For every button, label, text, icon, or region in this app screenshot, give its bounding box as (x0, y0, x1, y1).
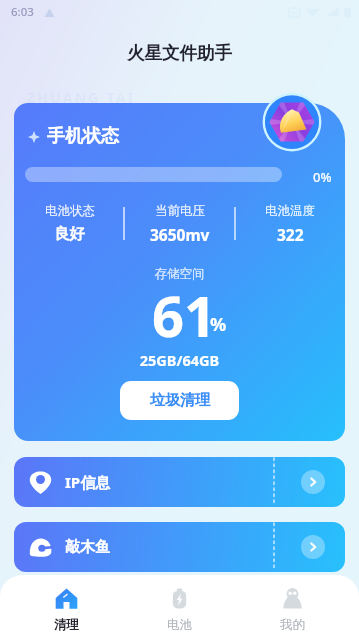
button[interactable]: 清理 (10, 575, 123, 638)
button[interactable]: Open 敲木鱼 (301, 535, 325, 559)
staticText: 当前电压 (155, 203, 205, 219)
staticText: 电池状态 (45, 203, 95, 219)
staticText: 手机状态 (47, 125, 119, 148)
button[interactable]: 我的 (236, 575, 349, 638)
staticText: 322 (277, 224, 304, 245)
staticText: 电池 (167, 617, 192, 633)
staticText: 电池温度 (265, 203, 315, 219)
staticText: 我的 (280, 617, 305, 633)
staticText: 敲木鱼 (65, 538, 110, 557)
button[interactable]: Open IP信息 (301, 470, 325, 494)
staticText: IP信息 (65, 472, 111, 492)
staticText: 清理 (54, 617, 79, 633)
staticText: ZHUANG TAI (27, 88, 136, 107)
staticText: 存储空间 (14, 266, 345, 282)
button[interactable]: Profile (263, 93, 321, 151)
staticText: 25GB/64GB (14, 350, 345, 370)
staticText: 垃圾清理 (150, 391, 210, 410)
button[interactable]: 敲木鱼 (14, 522, 345, 572)
button[interactable]: IP信息 (14, 457, 345, 507)
staticText: 火星文件助手 (127, 42, 232, 64)
staticText: 3650mv (150, 224, 210, 245)
staticText: 0% (313, 168, 332, 186)
staticText: 61 (152, 277, 217, 353)
button[interactable]: 电池 (123, 575, 236, 638)
staticText: 良好 (54, 224, 85, 244)
staticText: 6:03 (11, 4, 34, 20)
button[interactable]: 垃圾清理 (120, 381, 239, 420)
staticText: % (210, 312, 227, 337)
